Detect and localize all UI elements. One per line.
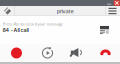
button[interactable]: Replay (33, 44, 62, 62)
button[interactable]: Play to speakers (62, 44, 91, 62)
staticText: 84 - All call (2, 27, 28, 33)
button[interactable]: Minimize (105, 0, 114, 6)
button[interactable]: Close (114, 0, 120, 6)
button[interactable]: Menu (105, 6, 120, 16)
staticText: private (56, 7, 73, 15)
button[interactable]: End call (91, 44, 120, 62)
staticText: Press Rec to record your message (2, 21, 62, 27)
button[interactable]: Record (0, 44, 33, 62)
button[interactable]: Account (0, 6, 15, 16)
